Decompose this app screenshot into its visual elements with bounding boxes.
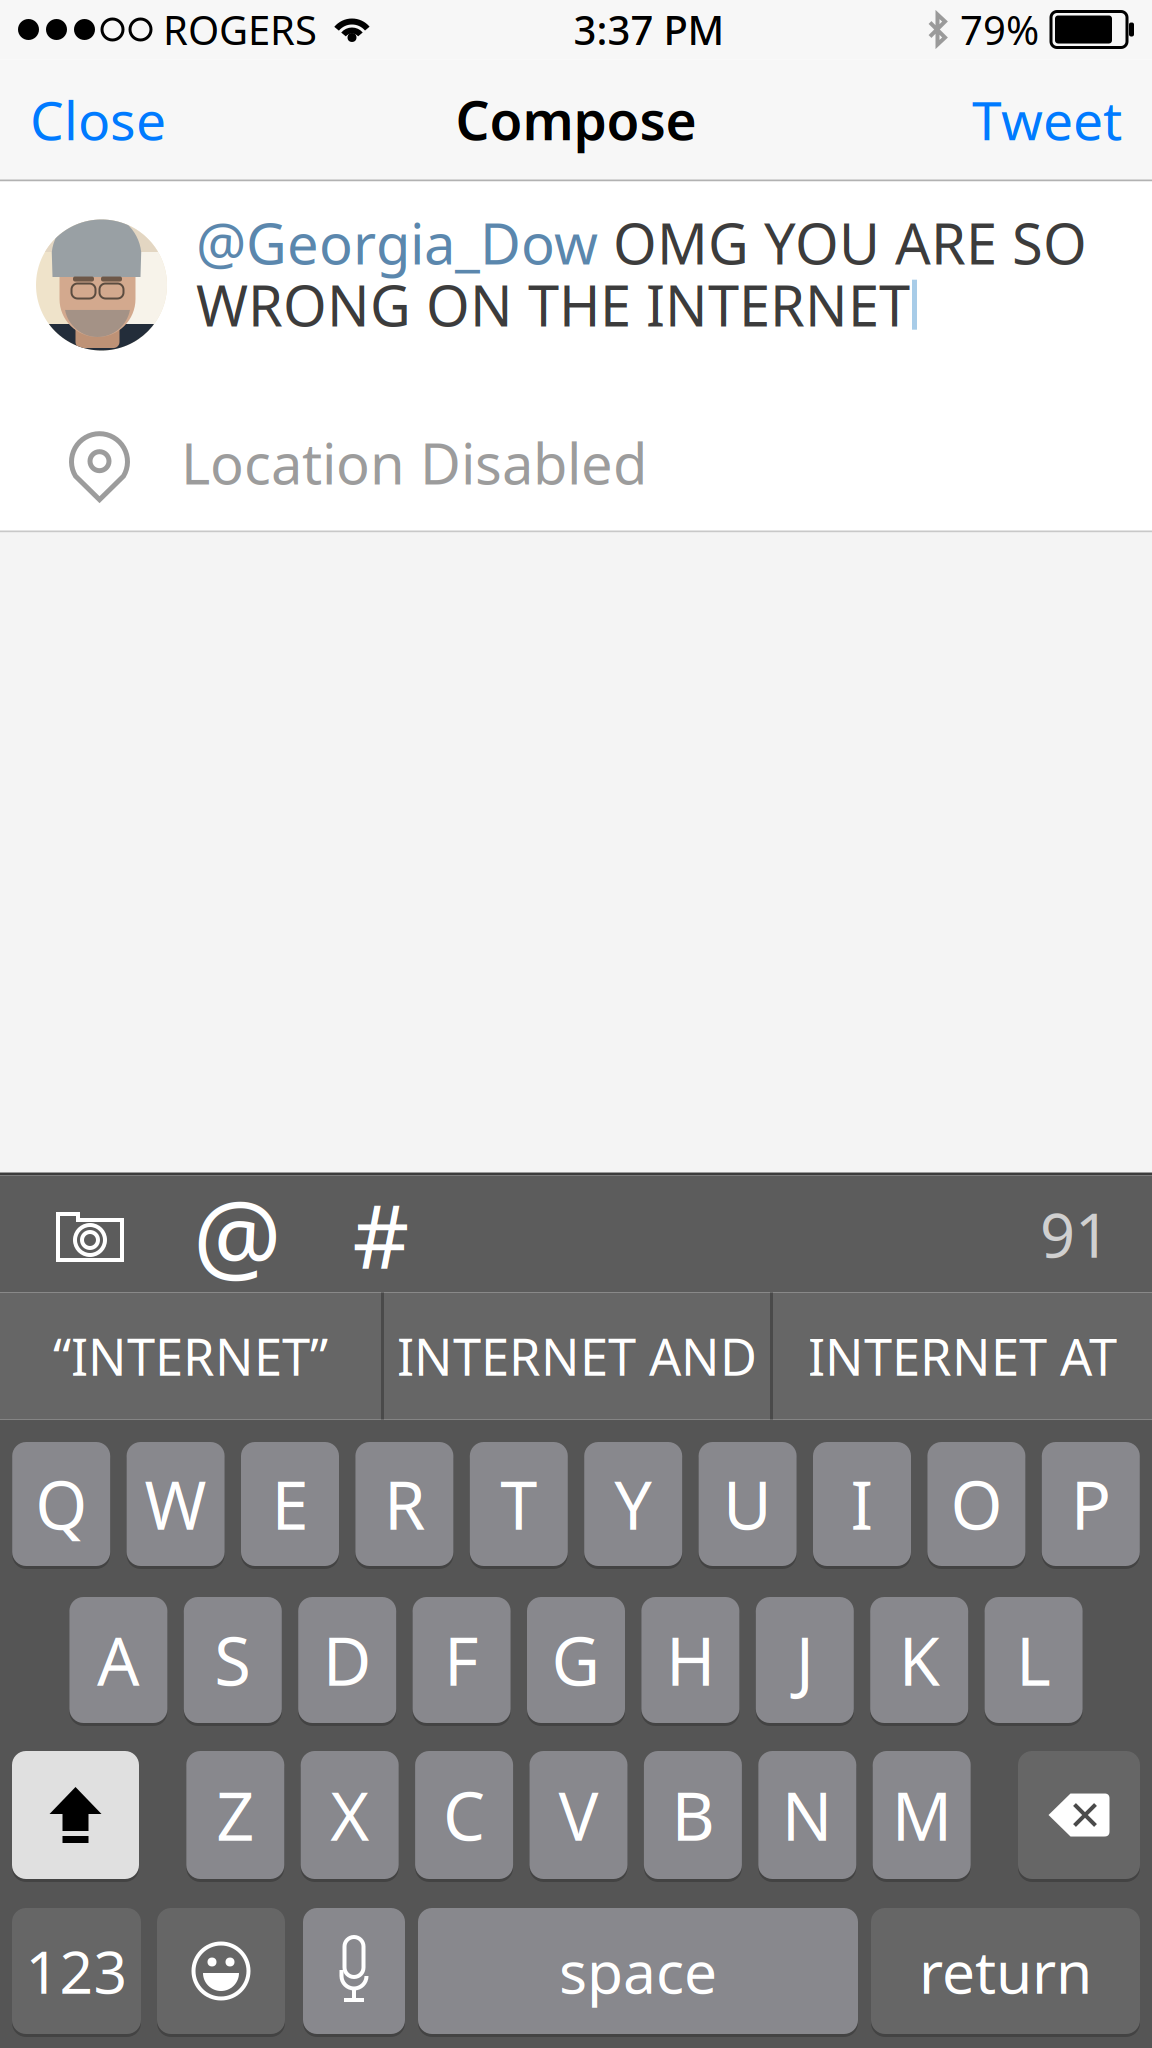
button[interactable]: L	[985, 1595, 1083, 1724]
button[interactable]: M	[873, 1749, 971, 1880]
staticText: Z	[216, 1771, 254, 1859]
staticText: @	[193, 1168, 282, 1299]
staticText: #	[352, 1176, 409, 1292]
staticText: V	[558, 1771, 598, 1859]
button[interactable]: Mention	[164, 1174, 311, 1294]
staticText: 79%	[960, 3, 1039, 56]
button[interactable]: Dictation	[303, 1906, 405, 2035]
staticText: INTERNET AND	[397, 1322, 757, 1390]
button[interactable]: I	[813, 1440, 911, 1567]
staticText: return	[919, 1932, 1092, 2010]
button[interactable]: E	[241, 1440, 339, 1567]
button[interactable]: A	[69, 1595, 167, 1724]
staticText: I	[850, 1460, 873, 1548]
button[interactable]: F	[413, 1595, 511, 1724]
staticText: F	[444, 1616, 479, 1704]
staticText: J	[796, 1616, 814, 1704]
staticText: space	[559, 1932, 717, 2010]
button[interactable]: O	[927, 1440, 1025, 1567]
button[interactable]: X	[301, 1749, 399, 1880]
button[interactable]: INTERNET AND	[384, 1292, 770, 1419]
staticText: G	[551, 1616, 600, 1704]
button[interactable]: Delete	[1018, 1749, 1140, 1880]
staticText: Tweet	[972, 84, 1122, 155]
staticText: Q	[35, 1460, 87, 1548]
button[interactable]: Shift	[12, 1749, 139, 1880]
staticText: S	[214, 1616, 251, 1704]
staticText: B	[671, 1771, 714, 1859]
staticText: WRONG ON THE INTERNET	[196, 267, 910, 342]
button[interactable]: return	[871, 1906, 1140, 2035]
staticText: Y	[614, 1460, 652, 1548]
button[interactable]: C	[415, 1749, 513, 1880]
staticText: T	[500, 1460, 537, 1548]
staticText: D	[323, 1616, 372, 1704]
button[interactable]: V	[529, 1749, 627, 1880]
button[interactable]: P	[1042, 1440, 1140, 1567]
staticText: 3:37 PM	[573, 3, 724, 56]
button[interactable]: J	[756, 1595, 854, 1724]
staticText: Location Disabled	[181, 425, 647, 500]
staticText: OMG YOU ARE SO	[598, 205, 1087, 280]
staticText: H	[666, 1616, 715, 1704]
button[interactable]: Q	[12, 1440, 110, 1567]
button[interactable]: T	[470, 1440, 568, 1567]
staticText: “INTERNET”	[53, 1322, 328, 1390]
button[interactable]: 123	[12, 1906, 141, 2035]
button[interactable]: INTERNET AT	[773, 1292, 1152, 1419]
staticText: W	[145, 1460, 207, 1548]
button[interactable]: N	[758, 1749, 856, 1880]
staticText: ROGERS	[163, 3, 317, 56]
staticText: Compose	[455, 84, 696, 155]
button[interactable]: Emoji	[157, 1906, 285, 2035]
staticText: 91	[1040, 1193, 1110, 1275]
button[interactable]: Close	[0, 61, 196, 177]
staticText: O	[950, 1460, 1002, 1548]
button[interactable]: Tweet	[942, 61, 1152, 177]
staticText: R	[384, 1460, 425, 1548]
button[interactable]: S	[184, 1595, 282, 1724]
button[interactable]: G	[527, 1595, 625, 1724]
button[interactable]: Add photo	[16, 1174, 164, 1294]
button[interactable]: “INTERNET”	[0, 1292, 381, 1419]
staticText: 123	[25, 1932, 127, 2010]
staticText: A	[97, 1616, 140, 1704]
button[interactable]: R	[355, 1440, 453, 1567]
button[interactable]: Z	[186, 1749, 284, 1880]
staticText: X	[330, 1771, 369, 1859]
button[interactable]: space	[418, 1906, 858, 2035]
staticText: C	[443, 1771, 485, 1859]
button[interactable]: H	[641, 1595, 739, 1724]
staticText: Close	[30, 84, 166, 155]
staticText: M	[892, 1771, 952, 1859]
staticText: U	[723, 1460, 772, 1548]
staticText: E	[271, 1460, 308, 1548]
button[interactable]: Hashtag	[311, 1174, 451, 1294]
button[interactable]: U	[699, 1440, 797, 1567]
staticText: @Georgia_Dow	[196, 205, 598, 280]
staticText: L	[1016, 1616, 1051, 1704]
button[interactable]: W	[127, 1440, 225, 1567]
staticText: INTERNET AT	[808, 1322, 1117, 1390]
button[interactable]: B	[644, 1749, 742, 1880]
staticText: K	[899, 1616, 940, 1704]
staticText: P	[1071, 1460, 1111, 1548]
staticText: N	[782, 1771, 833, 1859]
button[interactable]: K	[870, 1595, 968, 1724]
button[interactable]: D	[298, 1595, 396, 1724]
button[interactable]: Y	[584, 1440, 682, 1567]
